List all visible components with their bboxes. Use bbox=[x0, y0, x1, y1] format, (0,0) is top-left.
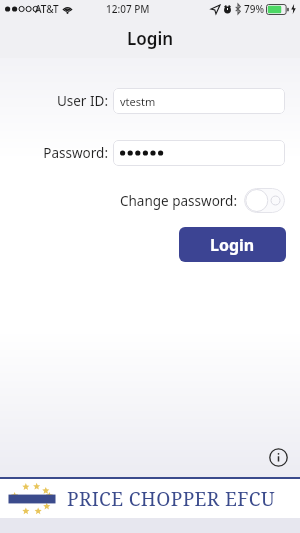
button[interactable]: vtestm bbox=[113, 88, 285, 114]
staticText: 12:07 PM bbox=[106, 2, 150, 16]
staticText: AT&T bbox=[35, 2, 59, 16]
staticText: Login bbox=[127, 27, 174, 50]
button[interactable]: Change password toggle bbox=[244, 188, 285, 213]
staticText: 79% bbox=[244, 2, 264, 16]
staticText: vtestm bbox=[120, 94, 156, 109]
staticText: User ID: bbox=[56, 92, 108, 110]
staticText: Login bbox=[210, 234, 255, 256]
staticText: Change password: bbox=[120, 192, 238, 210]
staticText: Password: bbox=[43, 144, 108, 162]
button[interactable] bbox=[113, 140, 285, 166]
staticText: PRICE CHOPPER EFCU bbox=[67, 486, 275, 512]
button[interactable]: Information bbox=[264, 443, 292, 471]
button[interactable]: Login bbox=[179, 227, 286, 262]
